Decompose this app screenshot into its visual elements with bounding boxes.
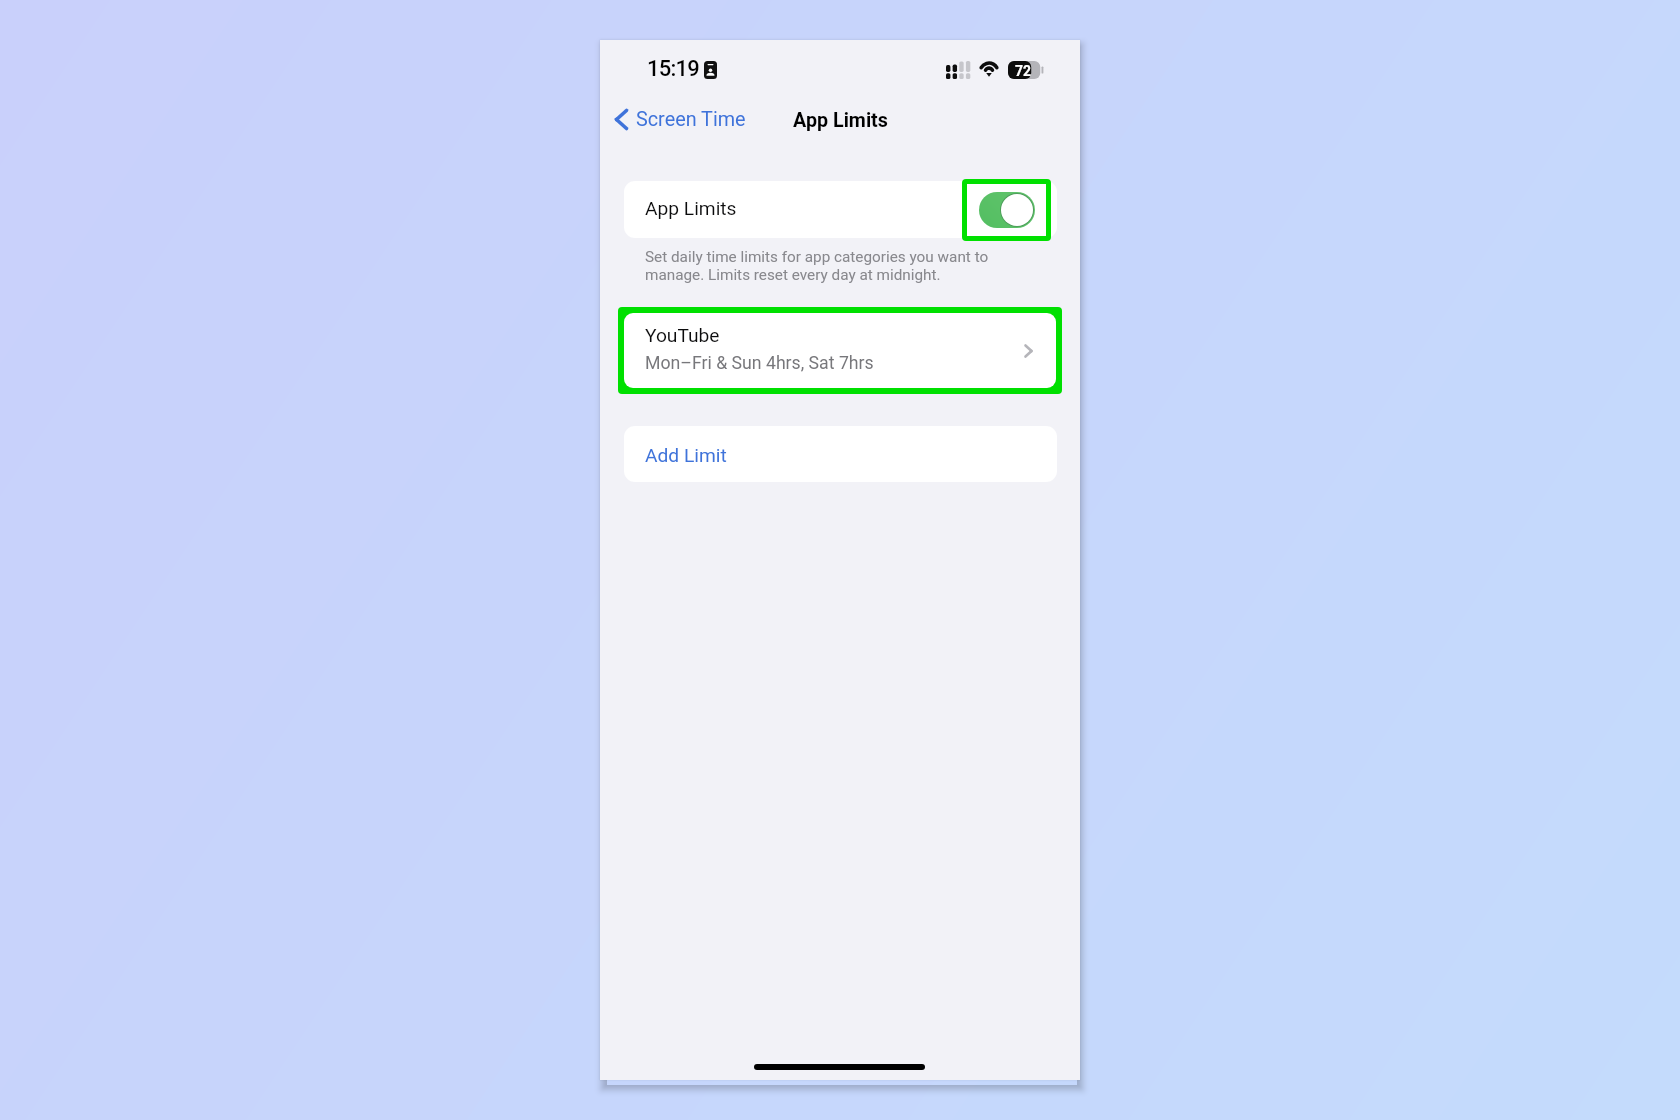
staticText: Screen Time xyxy=(636,108,746,131)
staticText: App Limits xyxy=(645,197,737,220)
staticText: 15:19 xyxy=(647,56,699,82)
staticText: Set daily time limits for app categories… xyxy=(645,248,989,284)
staticText: App Limits xyxy=(793,109,888,132)
button[interactable]: App Limits xyxy=(624,181,1057,238)
staticText: 72 xyxy=(1015,63,1032,79)
staticText: Mon–Fri & Sun 4hrs, Sat 7hrs xyxy=(645,353,874,374)
staticText: Add Limit xyxy=(645,444,727,467)
button[interactable]: Back to Screen Time xyxy=(613,103,746,135)
staticText: YouTube xyxy=(645,324,720,347)
button[interactable]: Add Limit xyxy=(624,426,1057,482)
button[interactable]: YouTube xyxy=(624,313,1056,388)
button[interactable]: App Limits toggle xyxy=(979,192,1035,228)
